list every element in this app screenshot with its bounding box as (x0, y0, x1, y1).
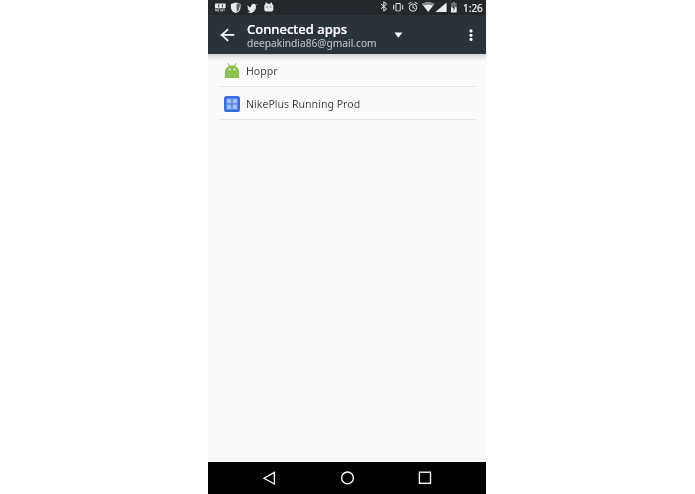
button[interactable]: Recent apps (393, 462, 486, 494)
staticText: 1:26 (463, 1, 483, 15)
button[interactable]: Switch account (386, 23, 410, 47)
staticText: NikePlus Running Prod (246, 97, 361, 111)
button[interactable]: NikePlus Running Prod (208, 87, 486, 119)
button[interactable]: More options (460, 20, 488, 48)
button[interactable]: Home (300, 462, 393, 494)
button[interactable]: Navigate up (213, 20, 243, 50)
staticText: deepakindia86@gmail.com (247, 36, 377, 50)
staticText: Hoppr (246, 64, 278, 78)
button[interactable]: Hoppr (208, 54, 486, 86)
staticText: Connected apps (247, 20, 348, 38)
button[interactable]: Back (208, 462, 300, 494)
